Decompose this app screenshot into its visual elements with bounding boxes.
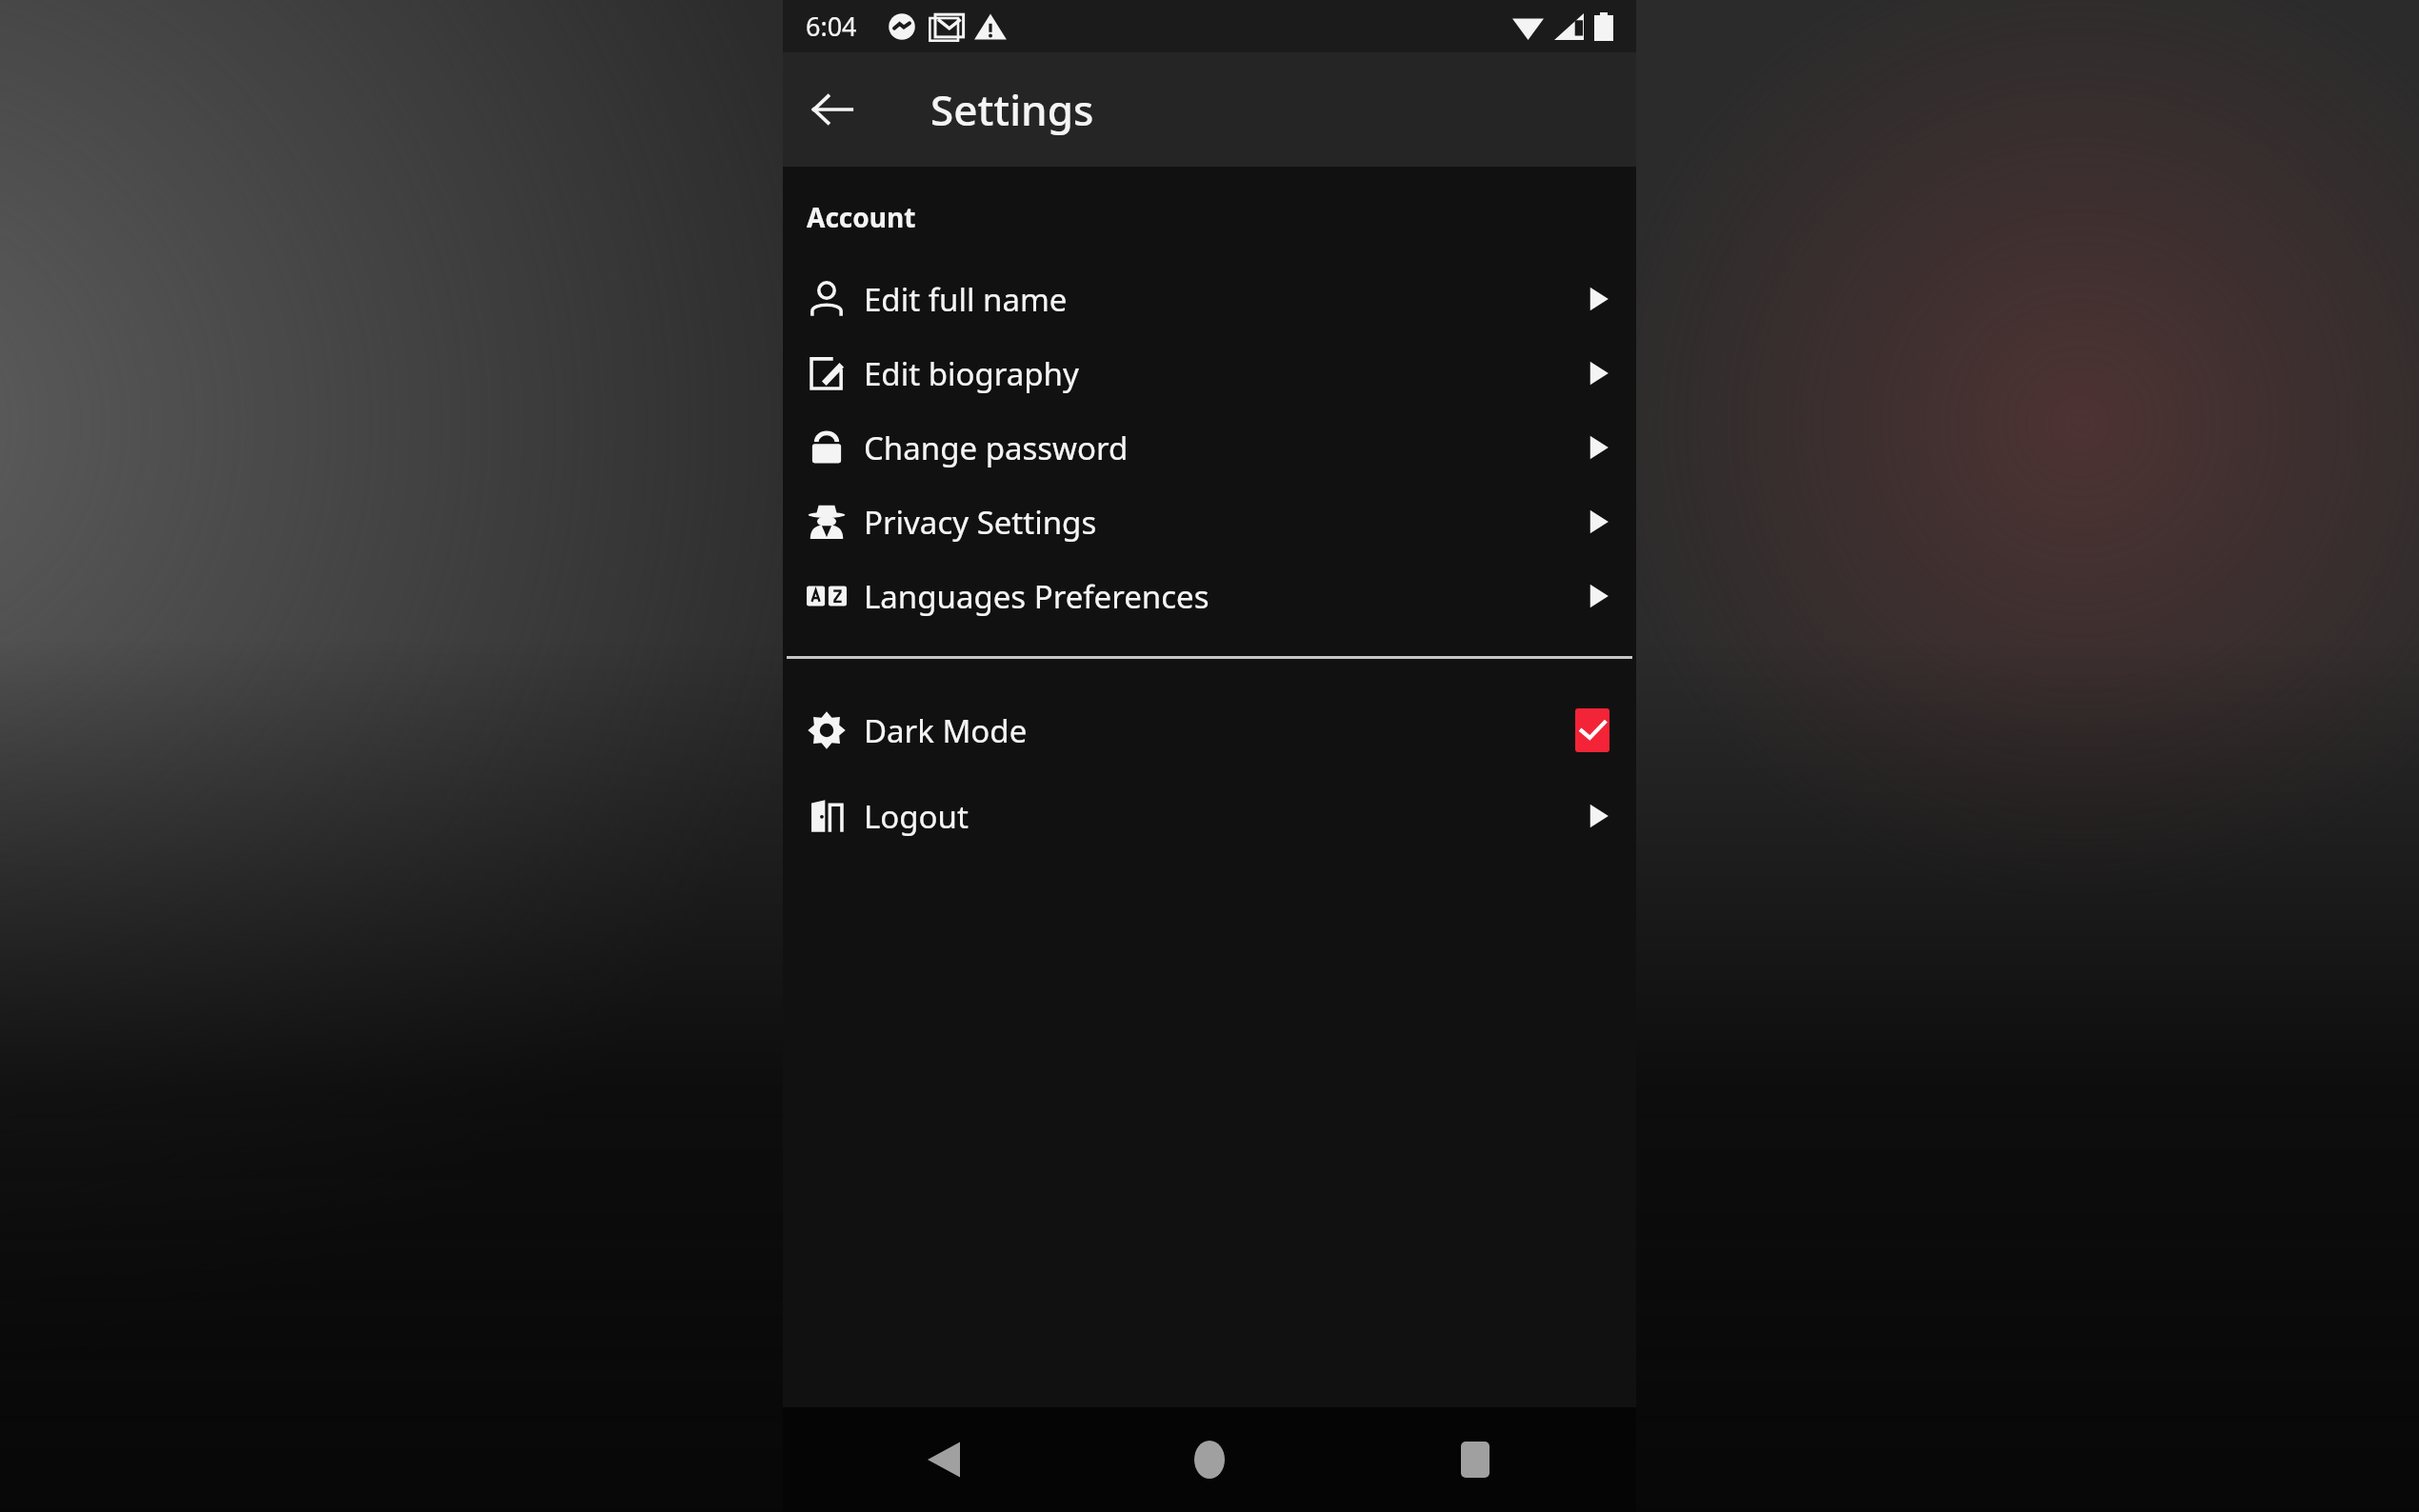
staticText: Account [807, 199, 916, 235]
staticText: Dark Mode [864, 709, 1028, 752]
button[interactable]: Dark Mode [783, 687, 1636, 773]
button[interactable]: Languages Preferences [783, 559, 1636, 633]
staticText: Languages Preferences [864, 575, 1209, 618]
staticText: Edit full name [864, 278, 1068, 321]
staticText: Edit biography [864, 352, 1079, 395]
button[interactable]: Privacy Settings [783, 485, 1636, 559]
button[interactable]: Back [794, 71, 870, 148]
button[interactable]: Edit biography [783, 336, 1636, 410]
button[interactable]: Home [1167, 1417, 1252, 1502]
button[interactable]: Edit full name [783, 262, 1636, 336]
staticText: Privacy Settings [864, 501, 1097, 544]
staticText: Settings [930, 81, 1094, 138]
button[interactable]: Change password [783, 410, 1636, 485]
staticText: Change password [864, 427, 1129, 469]
staticText: 6:04 [806, 9, 857, 44]
button[interactable]: Back [901, 1417, 987, 1502]
button[interactable]: Logout [783, 773, 1636, 859]
button[interactable]: Recents [1432, 1417, 1518, 1502]
staticText: Logout [864, 795, 969, 838]
